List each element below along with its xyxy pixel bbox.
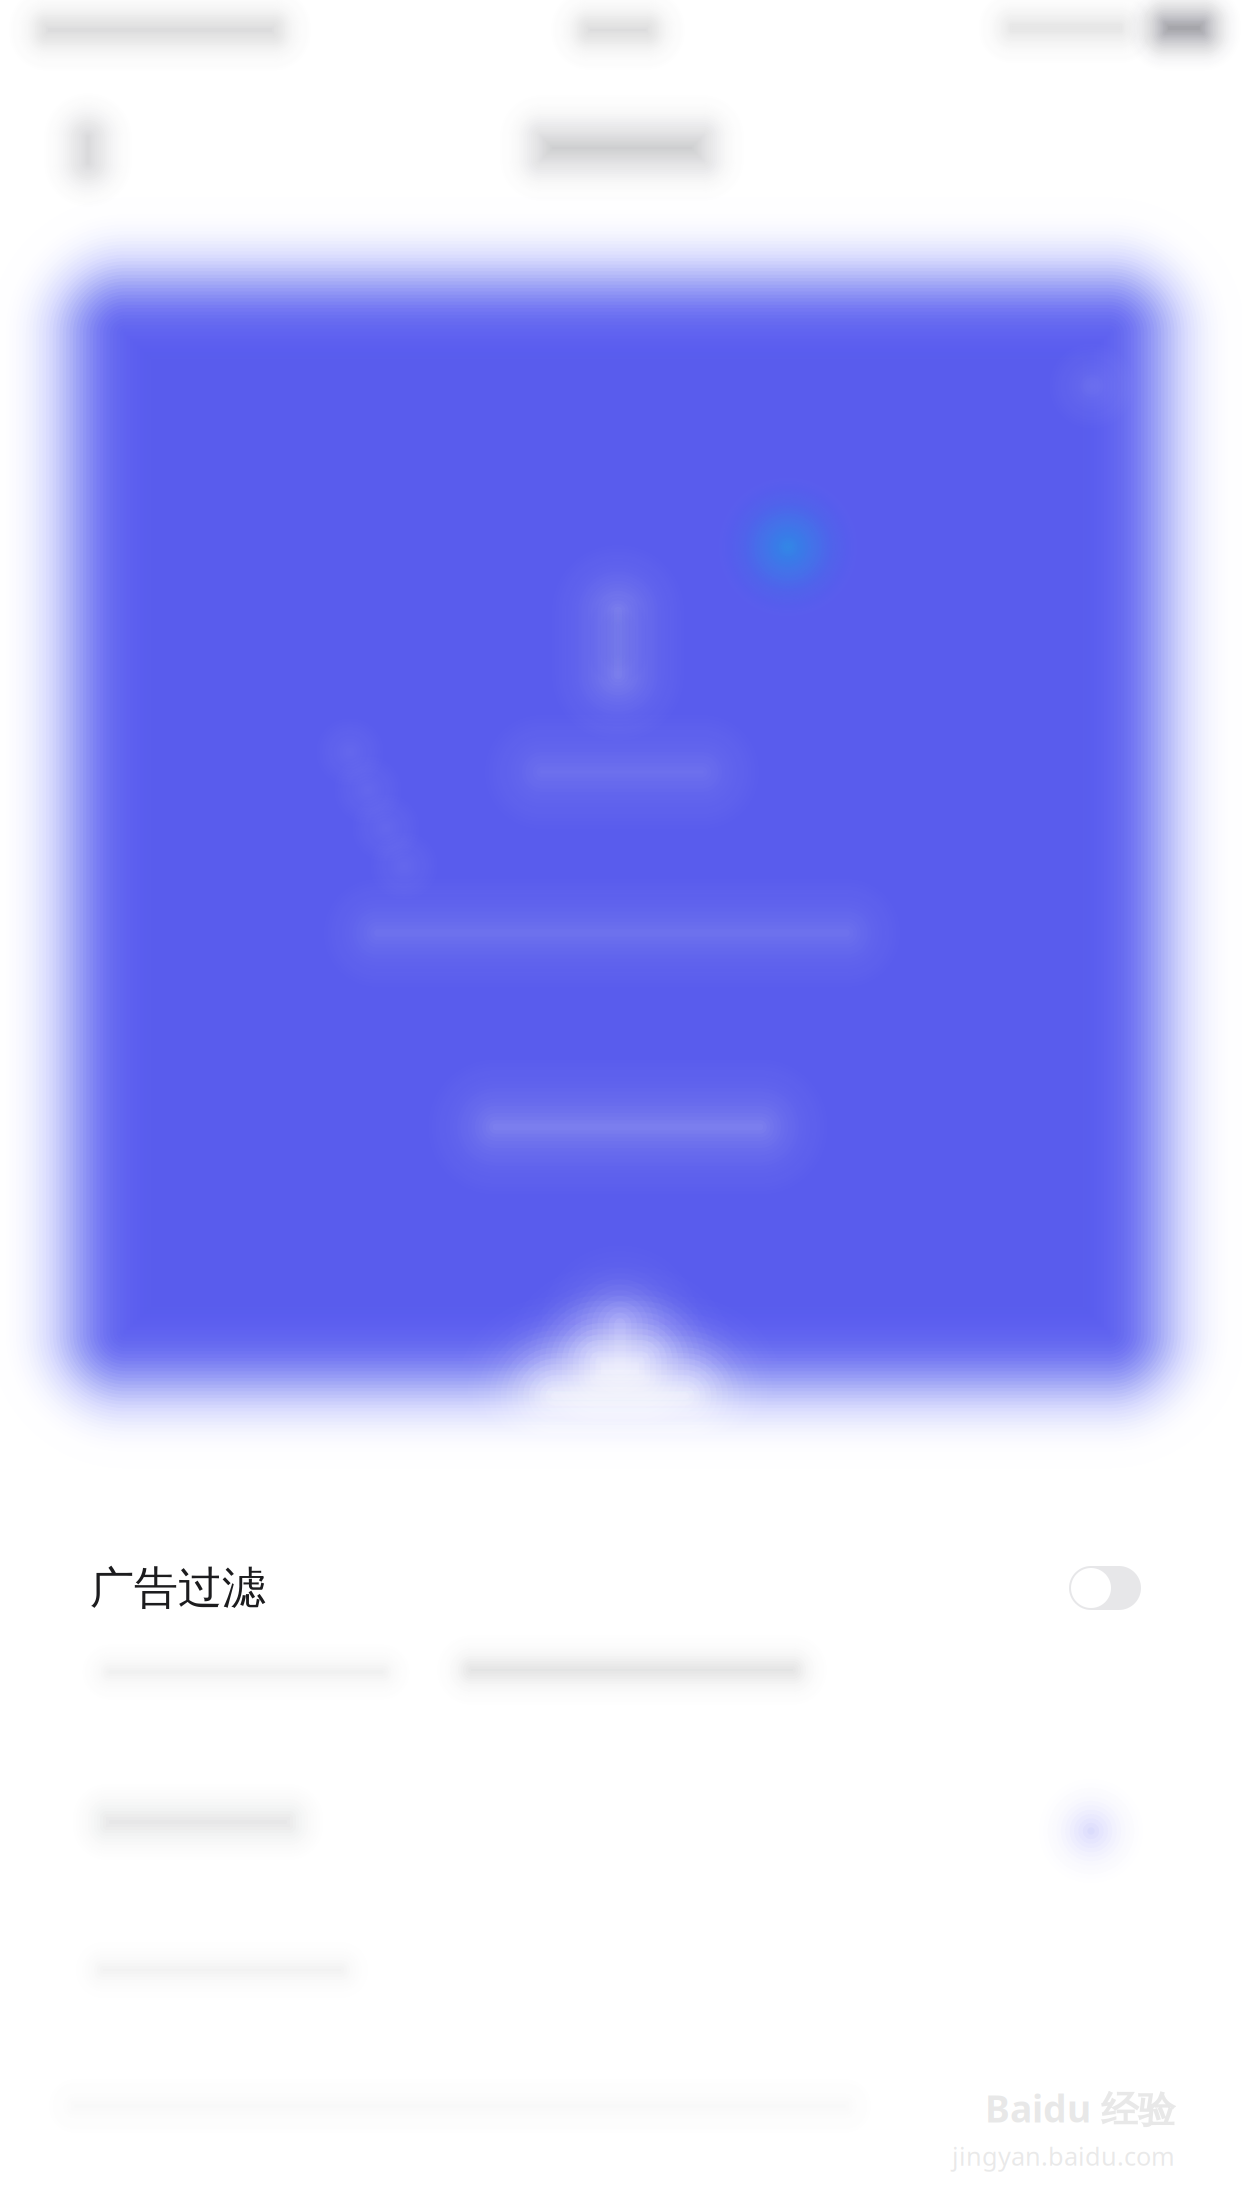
staticText: 广告过滤 — [90, 1561, 266, 1615]
button[interactable]: 广告过滤 — [0, 1528, 1242, 1648]
staticText: jingyan.baidu.com — [952, 2139, 1175, 2173]
staticText: Baidu 经验 — [985, 2083, 1175, 2133]
